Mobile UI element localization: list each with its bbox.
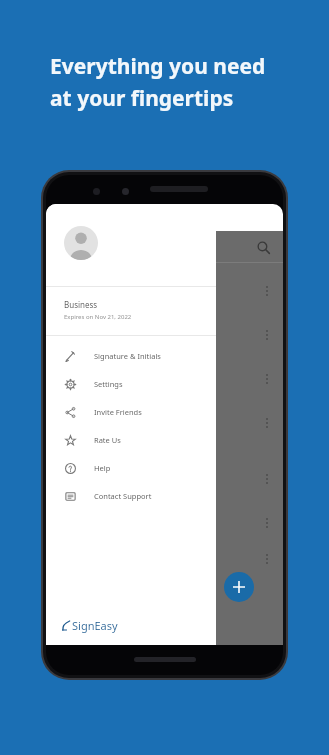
- button[interactable]: Contact Support: [46, 482, 216, 510]
- button[interactable]: More options: [263, 327, 271, 343]
- button[interactable]: Invite Friends: [46, 398, 216, 426]
- staticText: Rate Us: [94, 435, 121, 445]
- staticText: Contact Support: [94, 491, 152, 501]
- button[interactable]: More options: [263, 415, 271, 431]
- button[interactable]: More options: [263, 371, 271, 387]
- staticText: Everything you need: [50, 52, 266, 81]
- button[interactable]: More options: [263, 471, 271, 487]
- button[interactable]: Search: [253, 237, 273, 257]
- button[interactable]: Signature & Initials: [46, 342, 216, 370]
- button[interactable]: Account: [64, 226, 98, 260]
- staticText: Help: [94, 463, 111, 473]
- staticText: SignEasy: [72, 618, 118, 633]
- button[interactable]: Help: [46, 454, 216, 482]
- button[interactable]: More options: [263, 283, 271, 299]
- button[interactable]: Business: [46, 297, 216, 325]
- staticText: Business: [64, 299, 98, 310]
- staticText: at your fingertips: [50, 84, 234, 113]
- button[interactable]: More options: [263, 515, 271, 531]
- button[interactable]: Settings: [46, 370, 216, 398]
- staticText: Expires on Nov 21, 2022: [64, 313, 132, 321]
- button[interactable]: Rate Us: [46, 426, 216, 454]
- button[interactable]: SignEasy: [46, 618, 118, 645]
- button[interactable]: Add: [224, 572, 254, 602]
- button[interactable]: More options: [263, 551, 271, 567]
- staticText: Signature & Initials: [94, 351, 161, 361]
- staticText: Invite Friends: [94, 407, 142, 417]
- staticText: Settings: [94, 379, 123, 389]
